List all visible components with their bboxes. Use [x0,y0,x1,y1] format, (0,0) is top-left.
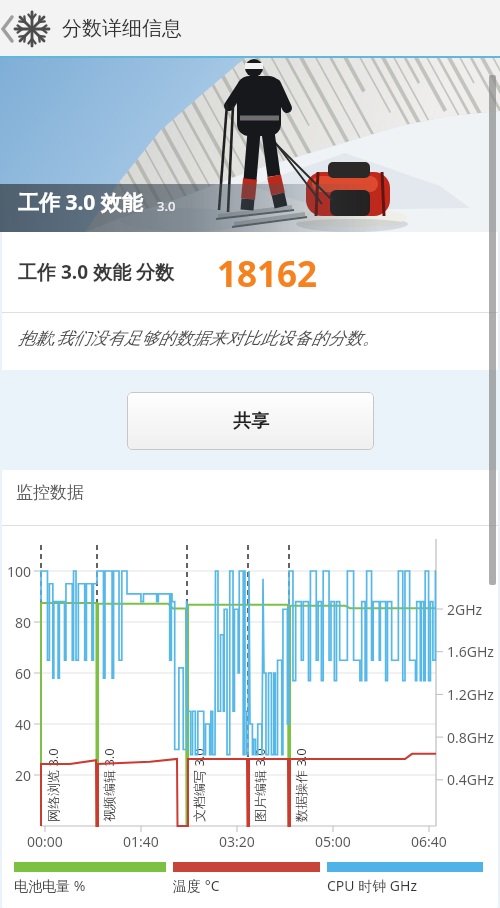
button[interactable] [0,14,16,44]
staticText: 共享 [233,410,269,433]
staticText: 3.0 [157,197,176,215]
staticText: 抱歉,我们没有足够的数据来对比此设备的分数。 [18,326,380,349]
staticText: 分数详细信息 [62,16,182,41]
staticText: 工作 3.0 效能 分数 [18,259,174,285]
staticText: 工作 3.0 效能 [18,188,143,217]
staticText: 18162 [217,250,318,298]
button[interactable]: 共享 [127,392,374,450]
staticText: 监控数据 [16,482,84,503]
